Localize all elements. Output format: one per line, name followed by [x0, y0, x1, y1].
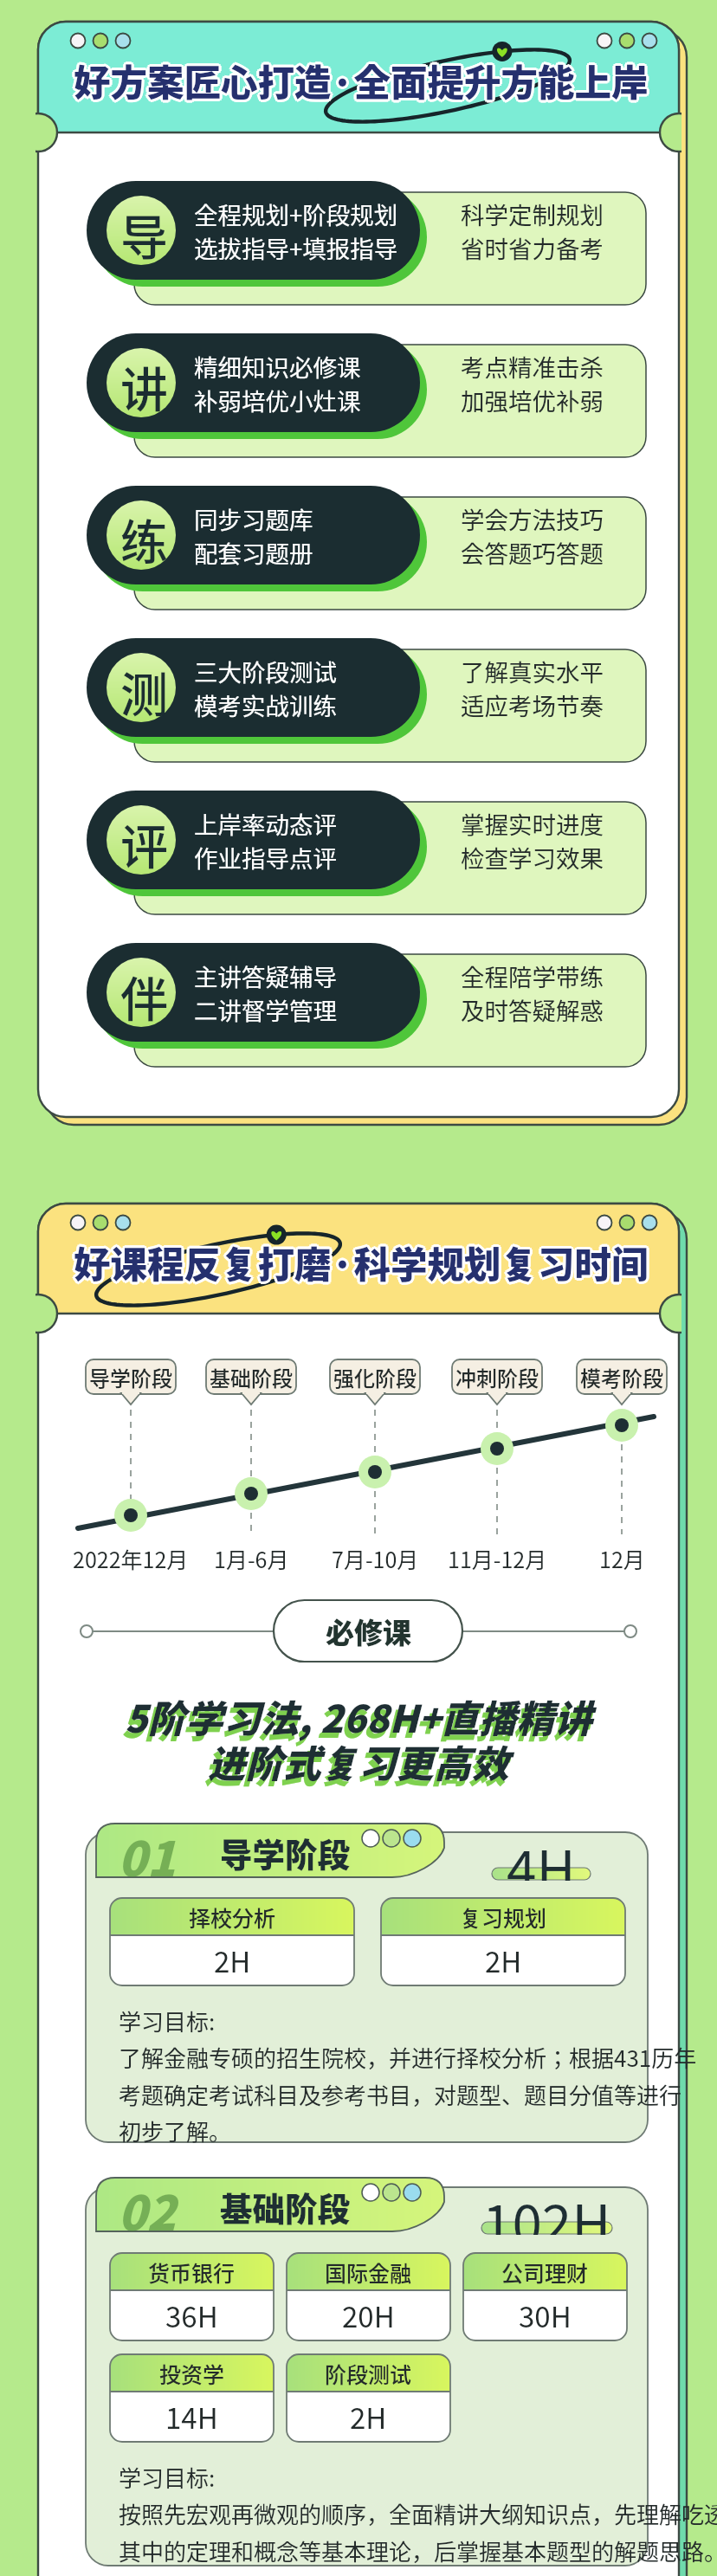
button[interactable]: 强化阶段 — [330, 1359, 420, 1394]
staticText: 好方案匠心打造·全面提升方能上岸 — [75, 55, 650, 109]
staticText: 阶段测试 — [325, 2358, 412, 2389]
staticText: 练 — [120, 504, 169, 573]
staticText: 模考阶段 — [580, 1362, 663, 1392]
button[interactable]: 基础阶段 — [206, 1359, 296, 1394]
staticText: 上岸率动态评 作业指导点评 — [194, 806, 337, 875]
staticText: 讲 — [120, 352, 169, 421]
staticText: 20H — [342, 2295, 395, 2336]
staticText: 基础阶段 — [220, 2183, 350, 2230]
staticText: 02 — [118, 2175, 176, 2244]
staticText: 投资学 — [159, 2358, 225, 2389]
staticText: 掌握实时进度 检查学习效果 — [461, 806, 604, 875]
button[interactable]: 讲 — [87, 333, 646, 432]
staticText: 7月-10月 — [332, 1543, 419, 1574]
button[interactable]: 冲刺阶段 — [452, 1359, 542, 1394]
staticText: 全程规划+阶段规划 选拔指导+填报指导 — [194, 197, 398, 265]
staticText: 好课程反复打磨·科学规划复习时间 — [76, 1236, 651, 1289]
button[interactable]: 阶段测试 — [287, 2354, 450, 2442]
staticText: 考点精准击杀 加强培优补弱 — [461, 349, 604, 417]
staticText: 评 — [120, 809, 169, 878]
staticText: 导学阶段 — [89, 1362, 172, 1392]
button[interactable]: 测 — [87, 638, 646, 737]
staticText: 了解真实水平 适应考场节奏 — [461, 654, 604, 722]
staticText: 按照先宏观再微观的顺序，全面精讲大纲知识点，先理解吃透 其中的定理和概念等基本理… — [119, 2497, 717, 2566]
staticText: 12月 — [599, 1543, 645, 1574]
staticText: 好课程反复打磨·科学规划复习时间 — [74, 1233, 649, 1287]
staticText: 好方案匠心打造·全面提升方能上岸 — [74, 51, 649, 105]
staticText: 全程陪学带练 及时答疑解惑 — [461, 959, 604, 1027]
staticText: 导学阶段 — [220, 1829, 350, 1876]
button[interactable]: 导 — [87, 181, 646, 280]
button[interactable]: 择校分析 — [110, 1898, 354, 1985]
staticText: 精细知识必修课 补弱培优小灶课 — [194, 349, 361, 417]
button[interactable]: 必修课 — [274, 1600, 462, 1662]
staticText: 择校分析 — [189, 1901, 276, 1933]
staticText: 2H — [485, 1940, 522, 1981]
staticText: 好课程反复打磨·科学规划复习时间 — [72, 1237, 647, 1291]
staticText: 1月-6月 — [214, 1543, 289, 1574]
staticText: 学习目标: — [119, 2005, 216, 2037]
staticText: 好方案匠心打造·全面提升方能上岸 — [75, 52, 650, 106]
button[interactable]: 投资学 — [110, 2354, 274, 2442]
staticText: 基础阶段 — [210, 1362, 293, 1392]
staticText: 好方案匠心打造·全面提升方能上岸 — [76, 54, 651, 107]
staticText: 2H — [350, 2396, 387, 2437]
staticText: 好课程反复打磨·科学规划复习时间 — [71, 1236, 646, 1289]
staticText: 测 — [120, 656, 169, 726]
staticText: 好方案匠心打造·全面提升方能上岸 — [74, 54, 649, 107]
button[interactable]: 伴 — [87, 943, 646, 1042]
staticText: 好方案匠心打造·全面提升方能上岸 — [74, 56, 649, 110]
button[interactable]: 货币银行 — [110, 2253, 274, 2340]
button[interactable]: 评 — [87, 791, 646, 889]
staticText: 4H — [507, 1827, 576, 1881]
button[interactable]: 公司理财 — [463, 2253, 627, 2340]
staticText: 强化阶段 — [333, 1362, 417, 1392]
staticText: 好课程反复打磨·科学规划复习时间 — [75, 1234, 650, 1288]
button[interactable]: 复习规划 — [381, 1898, 625, 1985]
staticText: 好课程反复打磨·科学规划复习时间 — [75, 1237, 650, 1291]
staticText: 好课程反复打磨·科学规划复习时间 — [74, 1238, 649, 1292]
staticText: 三大阶段测试 模考实战训练 — [194, 654, 337, 722]
staticText: 货币银行 — [148, 2256, 236, 2288]
staticText: 5阶学习法, 268H+直播精讲 — [121, 1695, 589, 1749]
staticText: 好方案匠心打造·全面提升方能上岸 — [72, 55, 647, 109]
staticText: 01 — [118, 1821, 176, 1890]
staticText: 11月-12月 — [448, 1543, 547, 1574]
button[interactable]: 模考阶段 — [577, 1359, 667, 1394]
staticText: 102H — [482, 2181, 611, 2235]
staticText: 主讲答疑辅导 二讲督学管理 — [194, 959, 337, 1027]
button[interactable]: 国际金融 — [287, 2253, 450, 2340]
staticText: 导 — [120, 199, 169, 268]
staticText: 进阶式复习更高效 — [208, 1734, 509, 1789]
staticText: 进阶式复习更高效 — [204, 1740, 506, 1794]
staticText: 2022年12月 — [73, 1543, 189, 1574]
staticText: 学习目标: — [119, 2461, 216, 2494]
staticText: 30H — [519, 2295, 572, 2336]
staticText: 好课程反复打磨·科学规划复习时间 — [74, 1236, 649, 1289]
staticText: 复习规划 — [460, 1901, 547, 1933]
staticText: 了解金融专硕的招生院校，并进行择校分析；根据431历年 考题确定考试科目及参考书… — [119, 2041, 697, 2147]
staticText: 14H — [165, 2396, 218, 2437]
staticText: 36H — [165, 2295, 218, 2336]
staticText: 伴 — [120, 961, 169, 1030]
staticText: 科学定制规划 省时省力备考 — [461, 197, 604, 265]
staticText: 公司理财 — [501, 2256, 589, 2288]
staticText: 好方案匠心打造·全面提升方能上岸 — [71, 54, 646, 107]
button[interactable]: 导学阶段 — [86, 1359, 176, 1394]
staticText: 好课程反复打磨·科学规划复习时间 — [72, 1234, 647, 1288]
staticText: 学会方法技巧 会答题巧答题 — [461, 501, 604, 570]
staticText: 国际金融 — [325, 2256, 412, 2288]
staticText: 必修课 — [326, 1611, 411, 1652]
staticText: 2H — [214, 1940, 251, 1981]
staticText: 好方案匠心打造·全面提升方能上岸 — [72, 52, 647, 106]
staticText: 冲刺阶段 — [455, 1362, 539, 1392]
staticText: 5阶学习法, 268H+直播精讲 — [125, 1689, 592, 1744]
staticText: 同步习题库 配套习题册 — [194, 501, 313, 570]
button[interactable]: 练 — [87, 486, 646, 584]
